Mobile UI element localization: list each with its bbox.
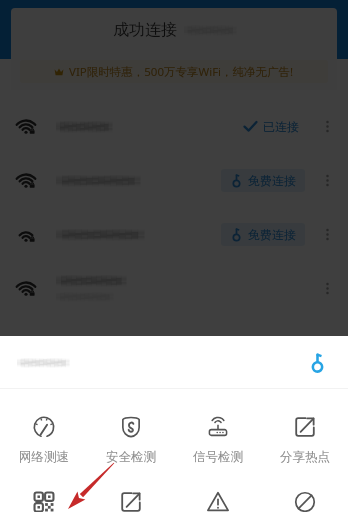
button[interactable]: Disconnect [261,465,348,512]
button[interactable]: 免费连接 [221,223,305,246]
button[interactable]: Share WiFi [87,465,174,512]
button[interactable]: Show password [302,347,332,377]
button[interactable]: 已连接 [0,99,348,153]
button[interactable]: 免费连接 [221,169,305,192]
button[interactable]: Security check [87,389,174,465]
staticText: 免费连接 [248,173,296,188]
button[interactable]: Network diagnosis [174,465,261,512]
button[interactable]: 免费连接 [0,207,348,261]
button[interactable]: Network speed test [0,389,87,465]
button[interactable]: 免费连接 [0,153,348,207]
staticText: 免费连接 [248,227,296,242]
button[interactable]: Scan QR to connect [0,465,87,512]
staticText: 信号检测 [193,449,243,465]
button[interactable]: Signal check [174,389,261,465]
staticText: VIP限时特惠，500万专享WiFi，纯净无广告! [69,64,294,80]
button[interactable]: VIP限时特惠，500万专享WiFi，纯净无广告! [20,60,328,83]
button[interactable]: More options [0,261,348,315]
button[interactable]: 已连接 [243,119,299,134]
staticText: 网络测速 [19,449,69,465]
staticText: 分享热点 [280,449,330,465]
staticText: 成功连接 [113,20,177,40]
staticText: 已连接 [263,119,299,134]
staticText: 安全检测 [106,449,156,465]
button[interactable]: Share hotspot [261,389,348,465]
